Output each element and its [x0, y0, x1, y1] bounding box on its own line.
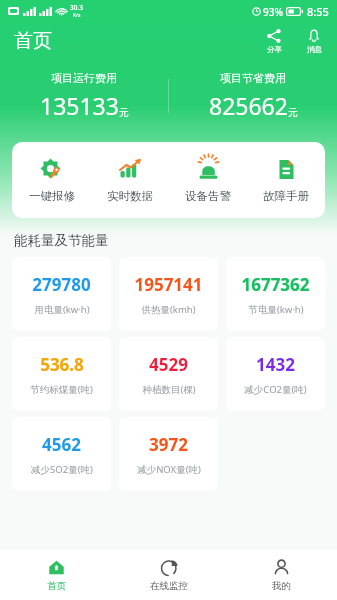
staticText: 能耗量及节能量	[14, 232, 109, 249]
staticText: 8:55	[307, 4, 329, 19]
button[interactable]: 3972	[119, 417, 218, 491]
staticText: 设备告警	[185, 189, 231, 203]
button[interactable]: 在线监控	[113, 550, 225, 600]
staticText: 分享好礼享不停	[110, 571, 208, 589]
staticText: 在线监控	[150, 580, 188, 592]
button[interactable]: 实时数据	[91, 155, 169, 205]
button[interactable]: 1432	[226, 337, 325, 411]
button[interactable]: 536.8	[12, 337, 111, 411]
staticText: 实时数据	[107, 189, 153, 203]
staticText: 供热量(kmh)	[141, 303, 196, 316]
button[interactable]: 消息	[303, 27, 325, 55]
staticText: 项目运行费用	[51, 71, 117, 85]
staticText: 节约标煤量(吨)	[30, 383, 93, 396]
staticText: 4529	[149, 353, 188, 376]
staticText: 1957141	[134, 273, 203, 296]
button[interactable]: 4529	[119, 337, 218, 411]
staticText: K/s	[73, 12, 81, 19]
button[interactable]: 首页	[0, 550, 113, 600]
staticText: 1432	[256, 353, 295, 376]
button[interactable]: 1957141	[119, 257, 218, 331]
staticText: 1677362	[241, 273, 310, 296]
staticText: 种植数目(棵)	[142, 383, 196, 396]
button[interactable]: 故障手册	[247, 155, 325, 205]
staticText: 825662	[209, 90, 288, 121]
staticText: 首页	[47, 580, 66, 592]
staticText: 30.3	[70, 3, 83, 12]
button[interactable]: 设备告警	[169, 155, 247, 205]
staticText: 消息	[307, 45, 322, 54]
staticText: 元	[288, 106, 298, 119]
staticText: 我的	[272, 580, 291, 592]
button[interactable]: 279780	[12, 257, 111, 331]
button[interactable]: 一键报修	[12, 155, 91, 205]
staticText: 用电量(kw·h)	[34, 303, 90, 316]
button[interactable]: 项目运行费用	[0, 71, 168, 121]
staticText: 项目节省费用	[220, 71, 286, 85]
staticText: 减少SO2量(吨)	[31, 463, 93, 476]
staticText: 首页	[14, 29, 52, 53]
button[interactable]: 分享	[263, 27, 285, 55]
staticText: 279780	[32, 273, 91, 296]
button[interactable]: 项目节省费用	[169, 71, 337, 121]
staticText: 故障手册	[263, 189, 309, 203]
staticText: 节电量(kw·h)	[248, 303, 304, 316]
staticText: 分享	[267, 45, 282, 54]
staticText: 536.8	[40, 353, 84, 376]
button[interactable]: 我的	[225, 550, 337, 600]
staticText: 立即	[285, 574, 305, 587]
staticText: 一键报修	[29, 189, 75, 203]
button[interactable]: 分享好礼享不停	[10, 545, 327, 600]
staticText: 135133	[40, 90, 119, 121]
staticText: 3972	[149, 433, 188, 456]
button[interactable]: 1677362	[226, 257, 325, 331]
staticText: 元	[119, 106, 129, 119]
staticText: 93%	[263, 5, 283, 19]
staticText: 4562	[42, 433, 81, 456]
staticText: 减少NOX量(吨)	[137, 463, 201, 476]
staticText: 减少CO2量(吨)	[244, 383, 307, 396]
button[interactable]: 4562	[12, 417, 111, 491]
